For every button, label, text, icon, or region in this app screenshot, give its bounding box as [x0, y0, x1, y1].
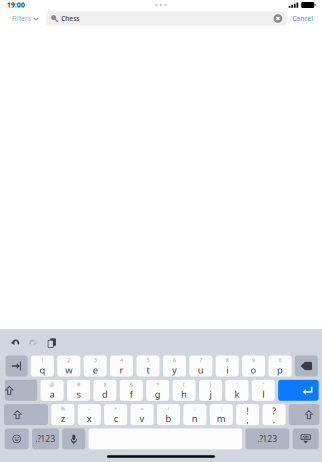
button[interactable]: &: [120, 380, 143, 401]
button[interactable]: #: [67, 380, 90, 401]
staticText: .: [273, 413, 276, 426]
button[interactable]: :: [210, 404, 233, 425]
button[interactable]: (: [173, 380, 196, 401]
button[interactable]: @: [40, 380, 64, 401]
staticText: g: [155, 388, 161, 400]
button[interactable]: 2: [57, 355, 80, 376]
staticText: 9: [252, 357, 255, 364]
staticText: r: [120, 364, 124, 376]
button[interactable]: 8: [216, 355, 239, 376]
staticText: d: [102, 388, 108, 400]
button[interactable]: Numbers: [245, 428, 289, 449]
button[interactable]: Delete: [295, 355, 318, 376]
staticText: c: [114, 412, 118, 425]
staticText: /: [167, 405, 169, 412]
button[interactable]: ": [252, 380, 275, 401]
staticText: $: [103, 381, 106, 388]
button[interactable]: Paste: [42, 332, 60, 352]
button[interactable]: 9: [242, 355, 265, 376]
staticText: e: [93, 364, 98, 376]
button[interactable]: 5: [136, 355, 159, 376]
staticText: p: [277, 364, 283, 376]
button[interactable]: 1: [31, 355, 54, 376]
staticText: ?: [272, 405, 276, 417]
staticText: t: [146, 364, 149, 376]
staticText: 4: [120, 357, 123, 364]
staticText: n: [192, 412, 198, 425]
button[interactable]: $: [93, 380, 116, 401]
staticText: 1: [41, 357, 44, 364]
staticText: ;: [194, 405, 195, 412]
button[interactable]: 4: [110, 355, 133, 376]
staticText: 6: [173, 357, 176, 364]
button[interactable]: =: [130, 404, 154, 425]
staticText: -: [88, 405, 90, 412]
staticText: y: [172, 364, 177, 376]
staticText: *: [156, 381, 159, 388]
button[interactable]: ': [225, 380, 248, 401]
button[interactable]: Shift: [289, 404, 319, 425]
button[interactable]: Search: [278, 380, 319, 401]
button[interactable]: Caps Lock: [5, 380, 37, 401]
staticText: .?123: [35, 434, 55, 444]
staticText: ,: [246, 413, 249, 426]
staticText: :: [221, 405, 222, 412]
staticText: #: [77, 381, 80, 388]
button[interactable]: !: [236, 404, 259, 425]
button[interactable]: ): [199, 380, 222, 401]
staticText: +: [114, 405, 117, 412]
staticText: 0: [278, 357, 281, 364]
staticText: o: [251, 364, 257, 376]
staticText: !: [246, 405, 249, 417]
staticText: @: [50, 381, 55, 388]
button[interactable]: 3: [84, 355, 107, 376]
button[interactable]: ?: [262, 404, 286, 425]
button[interactable]: /: [157, 404, 180, 425]
button[interactable]: -: [78, 404, 101, 425]
staticText: s: [76, 388, 80, 400]
staticText: 3: [94, 357, 97, 364]
staticText: 19:00: [7, 1, 25, 9]
staticText: q: [39, 364, 45, 376]
button[interactable]: Redo: [25, 332, 42, 352]
staticText: =: [141, 405, 144, 412]
staticText: j: [209, 388, 211, 400]
staticText: z: [61, 412, 65, 425]
staticText: w: [65, 364, 72, 376]
button[interactable]: ;: [183, 404, 206, 425]
button[interactable]: *: [146, 380, 169, 401]
staticText: %: [61, 405, 65, 412]
staticText: ': [236, 381, 237, 388]
staticText: i: [226, 364, 228, 376]
button[interactable]: Emoji: [5, 428, 29, 449]
button[interactable]: Shift: [4, 404, 48, 425]
staticText: k: [234, 388, 239, 400]
button[interactable]: Undo: [6, 332, 25, 352]
button[interactable]: Clear search text: [274, 14, 282, 23]
button[interactable]: 0: [268, 355, 292, 376]
button[interactable]: Hide Keyboard: [293, 428, 319, 449]
staticText: ": [262, 381, 264, 388]
staticText: l: [262, 388, 264, 400]
staticText: Chess: [61, 14, 79, 23]
button[interactable]: %: [51, 404, 74, 425]
staticText: Cancel: [292, 14, 313, 23]
button[interactable]: 6: [163, 355, 186, 376]
staticText: v: [140, 412, 145, 425]
staticText: &: [129, 381, 133, 388]
button[interactable]: Tab: [5, 355, 27, 376]
staticText: (: [183, 381, 185, 388]
button[interactable]: 7: [189, 355, 212, 376]
button[interactable]: Filters: [8, 11, 42, 25]
button[interactable]: Space: [89, 428, 242, 449]
button[interactable]: Cancel: [287, 11, 318, 25]
staticText: a: [50, 388, 55, 400]
staticText: ): [209, 381, 211, 388]
button[interactable]: Dictate: [62, 428, 85, 449]
button[interactable]: Numbers: [32, 428, 59, 449]
staticText: 8: [226, 357, 229, 364]
button[interactable]: +: [104, 404, 127, 425]
staticText: 7: [199, 357, 202, 364]
staticText: h: [181, 388, 187, 400]
staticText: x: [87, 412, 92, 425]
